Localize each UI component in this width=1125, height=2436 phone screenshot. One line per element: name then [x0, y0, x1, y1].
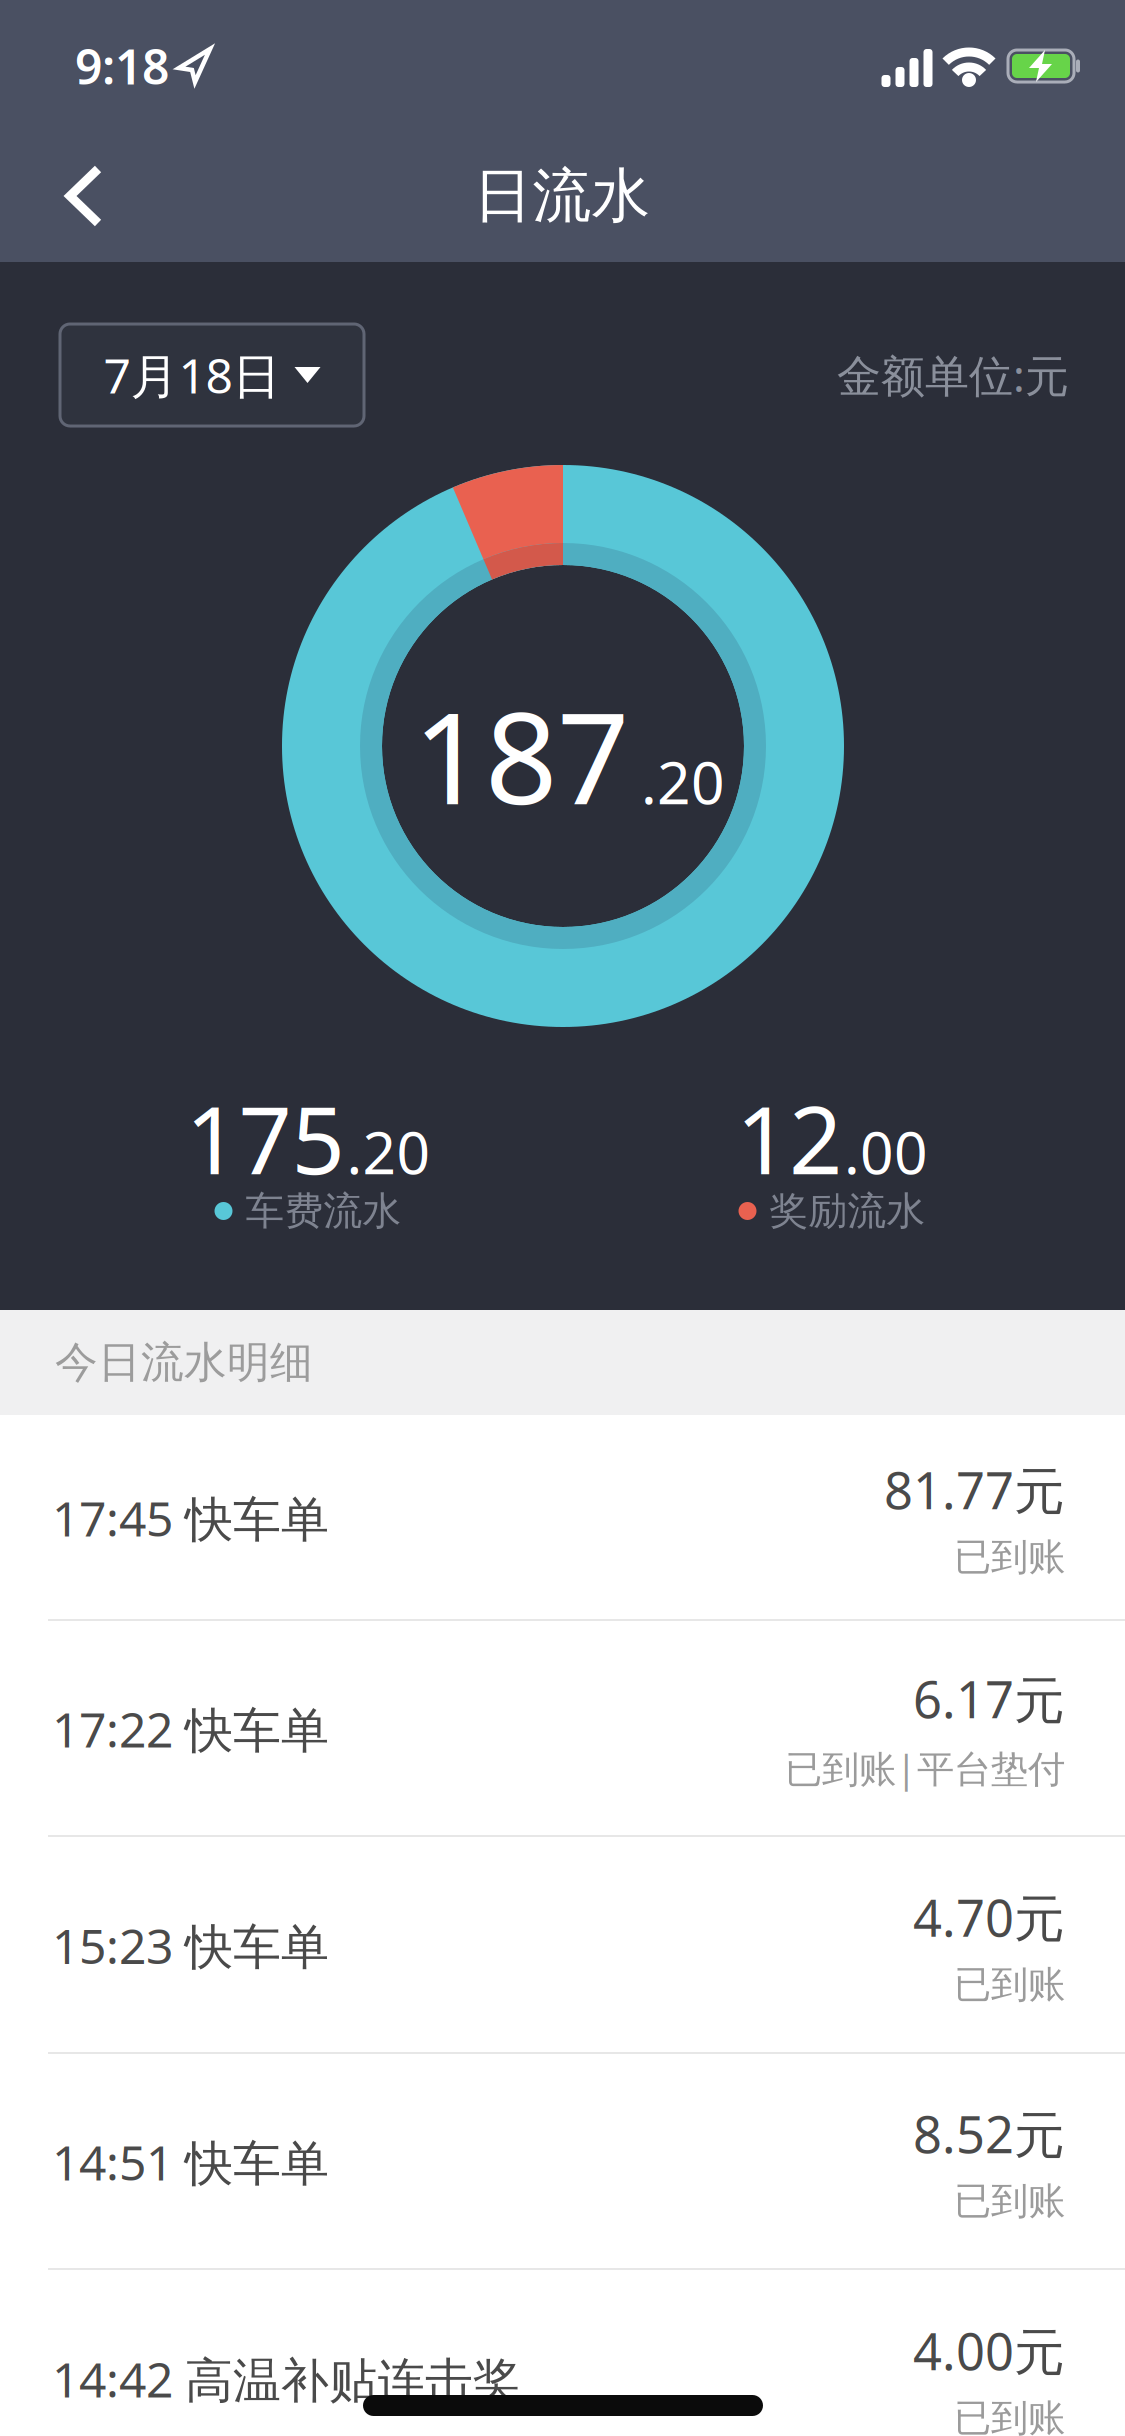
button[interactable]: 17:45 快车单: [0, 1415, 1125, 1621]
staticText: 已到账|平台垫付: [785, 1743, 1065, 1793]
staticText: 已到账: [954, 2395, 1065, 2436]
staticText: 4.00元: [913, 2317, 1065, 2384]
staticText: 9:18: [75, 34, 169, 98]
button[interactable]: 14:51 快车单: [0, 2054, 1125, 2270]
staticText: 175: [185, 1076, 344, 1200]
button[interactable]: 17:22 快车单: [0, 1621, 1125, 1837]
staticText: 8.52元: [913, 2100, 1065, 2167]
staticText: 14:51 快车单: [52, 2130, 329, 2194]
staticText: 今日流水明细: [55, 1336, 313, 1389]
staticText: 已到账: [954, 1534, 1065, 1580]
staticText: 已到账: [954, 1962, 1065, 2008]
staticText: 17:45 快车单: [52, 1486, 329, 1550]
staticText: 奖励流水: [769, 1187, 925, 1235]
staticText: 17:22 快车单: [52, 1697, 329, 1761]
button[interactable]: 15:23 快车单: [0, 1837, 1125, 2054]
staticText: .20: [346, 1112, 430, 1190]
staticText: 12: [736, 1076, 842, 1200]
staticText: 金额单位:元: [837, 346, 1069, 404]
button[interactable]: 14:42 高温补贴连击奖: [0, 2270, 1125, 2436]
staticText: 已到账: [954, 2178, 1065, 2224]
staticText: 187: [413, 671, 629, 839]
staticText: 6.17元: [913, 1665, 1065, 1732]
staticText: 4.70元: [913, 1883, 1065, 1951]
staticText: 车费流水: [245, 1187, 401, 1235]
staticText: 15:23 快车单: [52, 1914, 329, 1977]
staticText: 14:42 高温补贴连击奖: [52, 2347, 521, 2411]
staticText: .00: [844, 1112, 928, 1190]
staticText: 7月18日: [103, 343, 280, 407]
staticText: 日流水: [473, 160, 650, 232]
button[interactable]: [65, 166, 103, 226]
staticText: 81.77元: [884, 1456, 1065, 1523]
staticText: .20: [641, 742, 725, 820]
button[interactable]: 7月18日: [60, 324, 364, 426]
